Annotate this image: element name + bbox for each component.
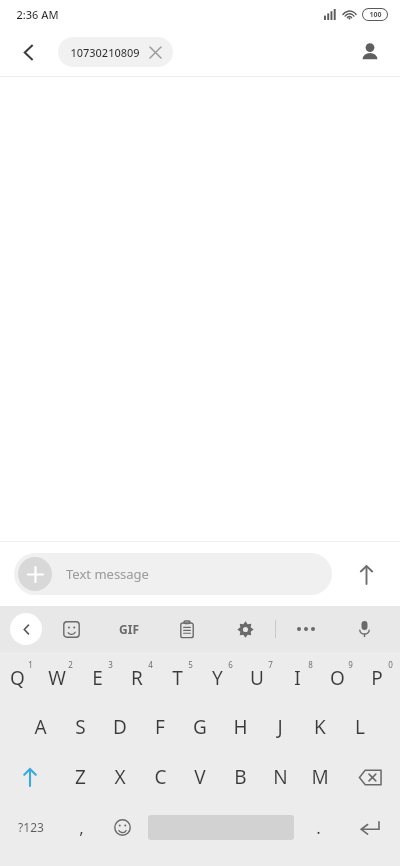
button[interactable]: Settings: [216, 606, 275, 652]
staticText: 3: [108, 659, 113, 670]
button[interactable]: Voice input: [335, 606, 394, 652]
staticText: S: [75, 714, 86, 740]
staticText: J: [277, 714, 283, 740]
staticText: Text message: [66, 565, 149, 583]
staticText: 9: [348, 659, 353, 670]
button[interactable]: R: [120, 652, 160, 702]
button[interactable]: S: [60, 702, 100, 752]
staticText: 8: [308, 659, 313, 670]
staticText: H: [233, 714, 248, 740]
staticText: C: [154, 764, 167, 790]
staticText: 1: [28, 659, 33, 670]
button[interactable]: Contact details: [350, 32, 390, 72]
button[interactable]: E: [80, 652, 120, 702]
staticText: ?123: [18, 819, 44, 835]
button[interactable]: Send: [346, 554, 386, 594]
button[interactable]: P: [360, 652, 400, 702]
staticText: 5: [188, 659, 193, 670]
button[interactable]: U: [240, 652, 280, 702]
staticText: M: [311, 764, 329, 790]
button[interactable]: Add attachment: [14, 553, 332, 595]
button[interactable]: G: [180, 702, 220, 752]
button[interactable]: More options: [276, 606, 335, 652]
button[interactable]: B: [220, 752, 260, 802]
staticText: Q: [10, 665, 25, 691]
staticText: 10730210809: [70, 45, 140, 60]
staticText: 100: [369, 10, 382, 20]
button[interactable]: V: [180, 752, 220, 802]
button[interactable]: Backspace: [340, 752, 400, 802]
staticText: K: [314, 714, 326, 740]
button[interactable]: Shift: [0, 752, 60, 802]
staticText: N: [273, 764, 288, 790]
staticText: 6: [228, 659, 233, 670]
button[interactable]: Emoji: [102, 802, 143, 852]
staticText: GIF: [119, 621, 139, 637]
button[interactable]: X: [100, 752, 140, 802]
button[interactable]: W: [40, 652, 80, 702]
staticText: R: [131, 665, 143, 691]
button[interactable]: ,: [61, 802, 102, 852]
button[interactable]: Enter: [339, 802, 400, 852]
button[interactable]: ?123: [0, 802, 61, 852]
button[interactable]: O: [320, 652, 360, 702]
button[interactable]: Z: [60, 752, 100, 802]
button[interactable]: Collapse toolbar: [10, 613, 42, 645]
staticText: W: [48, 665, 66, 691]
staticText: 2:36 AM: [16, 7, 59, 22]
button[interactable]: Back: [8, 32, 48, 72]
button[interactable]: T: [160, 652, 200, 702]
button[interactable]: Clipboard: [158, 606, 216, 652]
button[interactable]: Add attachment: [18, 557, 52, 591]
button[interactable]: F: [140, 702, 180, 752]
staticText: Y: [212, 665, 223, 691]
button[interactable]: D: [100, 702, 140, 752]
button[interactable]: I: [280, 652, 320, 702]
button[interactable]: A: [20, 702, 60, 752]
staticText: Z: [75, 764, 86, 790]
staticText: 2: [68, 659, 73, 670]
button[interactable]: .: [298, 802, 339, 852]
staticText: F: [155, 714, 165, 740]
button[interactable]: L: [340, 702, 380, 752]
button[interactable]: M: [300, 752, 340, 802]
staticText: V: [194, 764, 206, 790]
staticText: G: [193, 714, 207, 740]
button[interactable]: [143, 802, 298, 852]
button[interactable]: GIF: [100, 606, 158, 652]
staticText: .: [316, 816, 321, 839]
staticText: A: [34, 714, 47, 740]
staticText: B: [234, 764, 247, 790]
staticText: P: [371, 665, 383, 691]
staticText: T: [172, 665, 183, 691]
staticText: I: [294, 665, 301, 691]
staticText: X: [114, 764, 126, 790]
button[interactable]: Y: [200, 652, 240, 702]
button[interactable]: N: [260, 752, 300, 802]
button[interactable]: J: [260, 702, 300, 752]
button[interactable]: K: [300, 702, 340, 752]
button[interactable]: Stickers: [42, 606, 100, 652]
staticText: L: [355, 714, 365, 740]
staticText: O: [330, 665, 345, 691]
staticText: 7: [268, 659, 273, 670]
staticText: U: [250, 665, 264, 691]
staticText: ,: [79, 816, 84, 839]
button[interactable]: 10730210809: [58, 37, 173, 67]
staticText: 0: [388, 659, 393, 670]
staticText: D: [113, 714, 127, 740]
button[interactable]: C: [140, 752, 180, 802]
button[interactable]: Q: [0, 652, 40, 702]
staticText: 4: [148, 659, 153, 670]
staticText: E: [92, 665, 103, 691]
button[interactable]: H: [220, 702, 260, 752]
